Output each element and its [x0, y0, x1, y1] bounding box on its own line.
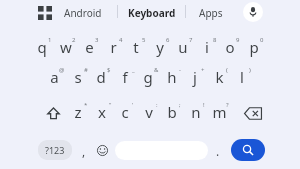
- staticText: 3: [95, 36, 99, 44]
- staticText: h: [167, 67, 177, 87]
- staticText: m: [212, 102, 227, 122]
- staticText: 8: [213, 36, 217, 44]
- staticText: r: [110, 37, 117, 57]
- button[interactable]: Search: [231, 139, 265, 161]
- staticText: ": [109, 101, 112, 109]
- staticText: t: [133, 37, 139, 57]
- staticText: &: [154, 66, 159, 74]
- staticText: Android: [64, 6, 102, 20]
- staticText: x: [98, 102, 106, 122]
- button[interactable]: ,: [76, 141, 92, 160]
- staticText: a: [50, 67, 59, 87]
- staticText: Keyboard: [128, 6, 176, 20]
- staticText: _: [132, 66, 135, 74]
- staticText: g: [143, 67, 153, 87]
- button[interactable]: l: [231, 65, 253, 89]
- button[interactable]: m: [208, 100, 230, 124]
- staticText: 4: [119, 36, 123, 44]
- button[interactable]: e: [78, 35, 100, 59]
- button[interactable]: Shift: [42, 103, 64, 123]
- staticText: y: [156, 37, 164, 57]
- button[interactable]: Backspace: [241, 103, 265, 123]
- button[interactable]: d: [90, 65, 112, 89]
- button[interactable]: x: [91, 100, 113, 124]
- staticText: p: [249, 37, 259, 57]
- staticText: c: [121, 102, 129, 122]
- staticText: ': [132, 101, 134, 109]
- button[interactable]: s: [67, 65, 89, 89]
- button[interactable]: .: [210, 141, 226, 160]
- staticText: w: [60, 37, 72, 57]
- staticText: u: [178, 37, 188, 57]
- button[interactable]: f: [114, 65, 136, 89]
- button[interactable]: y: [149, 35, 171, 59]
- staticText: ): [249, 66, 251, 74]
- staticText: b: [167, 102, 177, 122]
- staticText: d: [96, 67, 106, 87]
- button[interactable]: a: [43, 65, 65, 89]
- staticText: 1: [48, 36, 52, 44]
- staticText: 5: [142, 36, 146, 44]
- button[interactable]: b: [161, 100, 183, 124]
- staticText: n: [191, 102, 201, 122]
- button[interactable]: Voice input: [243, 2, 263, 22]
- staticText: 7: [189, 36, 193, 44]
- staticText: e: [85, 37, 94, 57]
- button[interactable]: Space: [115, 141, 208, 160]
- staticText: 9: [236, 36, 240, 44]
- staticText: l: [240, 67, 244, 87]
- button[interactable]: c: [114, 100, 136, 124]
- button[interactable]: o: [219, 35, 241, 59]
- staticText: j: [193, 67, 197, 87]
- button[interactable]: q: [31, 35, 53, 59]
- staticText: :: [156, 101, 158, 109]
- button[interactable]: Emoji: [93, 141, 111, 159]
- staticText: 0: [260, 36, 264, 44]
- staticText: o: [225, 37, 235, 57]
- button[interactable]: Android: [60, 4, 106, 22]
- button[interactable]: t: [125, 35, 147, 59]
- staticText: ?123: [45, 144, 65, 156]
- button[interactable]: ?123: [38, 140, 72, 160]
- staticText: k: [215, 67, 224, 87]
- staticText: (: [226, 66, 228, 74]
- button[interactable]: j: [184, 65, 206, 89]
- staticText: !: [203, 101, 205, 109]
- button[interactable]: u: [172, 35, 194, 59]
- staticText: ?: [226, 101, 229, 109]
- staticText: #: [84, 66, 88, 74]
- staticText: i: [205, 37, 209, 57]
- staticText: *: [84, 101, 88, 109]
- staticText: z: [74, 102, 82, 122]
- staticText: v: [145, 102, 153, 122]
- staticText: $: [107, 66, 111, 74]
- button[interactable]: p: [243, 35, 265, 59]
- staticText: ;: [179, 101, 181, 109]
- staticText: s: [74, 67, 82, 87]
- button[interactable]: w: [55, 35, 77, 59]
- button[interactable]: Keyboard: [124, 4, 180, 22]
- button[interactable]: z: [67, 100, 89, 124]
- button[interactable]: i: [196, 35, 218, 59]
- button[interactable]: v: [138, 100, 160, 124]
- staticText: q: [37, 37, 47, 57]
- staticText: -: [179, 66, 181, 74]
- staticText: 2: [72, 36, 76, 44]
- staticText: @: [59, 66, 65, 74]
- staticText: ,: [82, 143, 86, 159]
- button[interactable]: h: [161, 65, 183, 89]
- staticText: +: [201, 66, 205, 74]
- staticText: f: [122, 67, 128, 87]
- staticText: 6: [166, 36, 170, 44]
- button[interactable]: Apps grid: [38, 6, 52, 20]
- button[interactable]: Apps: [195, 4, 227, 22]
- button[interactable]: g: [137, 65, 159, 89]
- button[interactable]: r: [102, 35, 124, 59]
- button[interactable]: n: [185, 100, 207, 124]
- staticText: Apps: [199, 6, 223, 20]
- staticText: .: [216, 143, 220, 159]
- button[interactable]: k: [208, 65, 230, 89]
